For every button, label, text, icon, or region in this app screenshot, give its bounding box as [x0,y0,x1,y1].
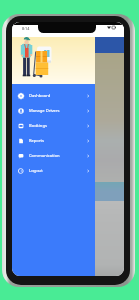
staticText: Reports [29,138,44,144]
staticText: 8:14 [22,26,30,31]
button[interactable]: Communication [12,148,95,163]
staticText: Communication [29,153,60,159]
button[interactable]: Bookings [12,118,95,133]
button[interactable]: Reports [12,133,95,148]
button[interactable]: Manage Drivers [12,103,95,118]
button[interactable]: Dashboard [12,88,95,103]
staticText: Bookings [29,123,47,129]
staticText: Dashboard [29,93,51,99]
button[interactable]: Logout [12,163,95,178]
staticText: Manage Drivers [29,108,60,114]
staticText: Logout [29,168,43,174]
